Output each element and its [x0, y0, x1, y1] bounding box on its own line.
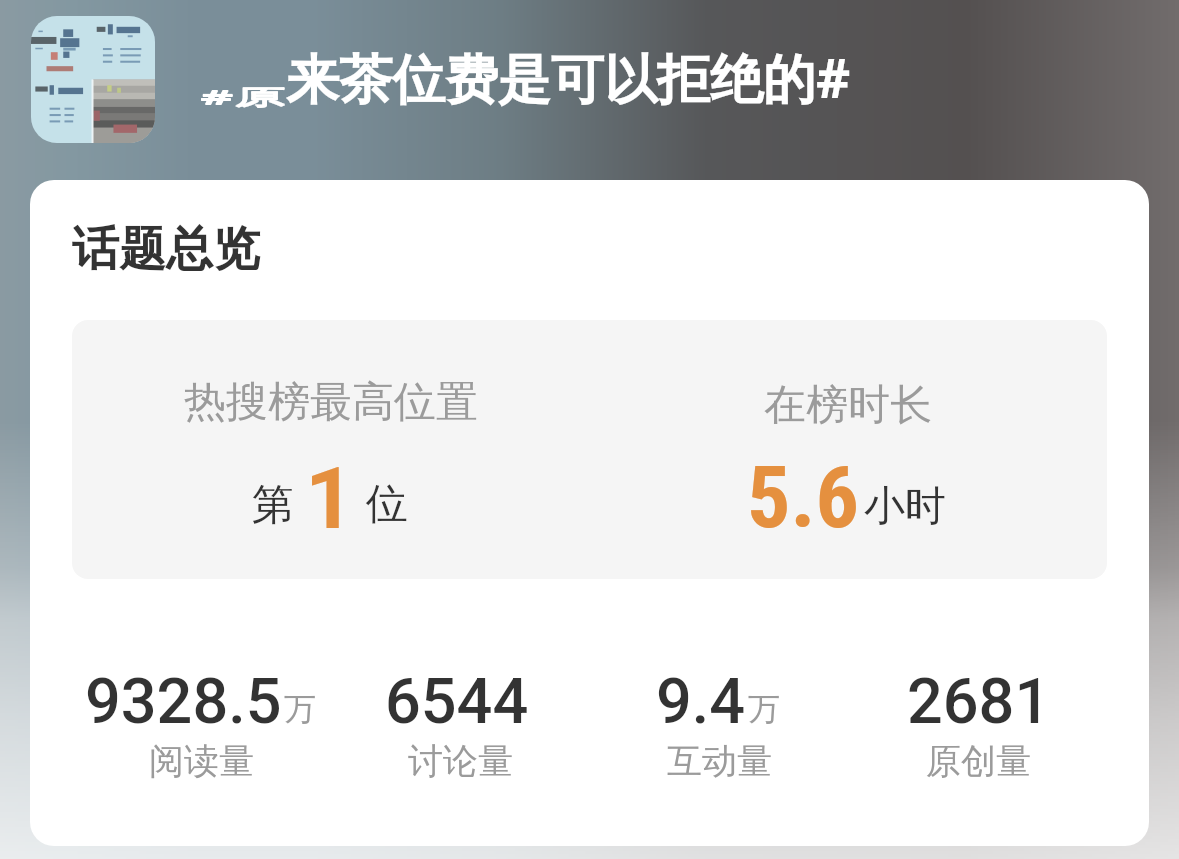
staticText: 在榜时长 [764, 379, 932, 432]
staticText: 互动量 [667, 739, 772, 783]
button[interactable]: 6544 [310, 650, 610, 770]
staticText: 原创量 [926, 739, 1031, 783]
staticText: 万 [748, 689, 780, 729]
staticText: #原 [200, 82, 286, 109]
staticText: 万 [284, 689, 316, 729]
staticText: 第 [252, 479, 294, 532]
button[interactable]: 9.4 [569, 650, 869, 770]
staticText: 阅读量 [149, 739, 254, 783]
button[interactable]: 热搜榜最高位置 [72, 320, 589, 579]
button[interactable]: 2681 [828, 650, 1128, 770]
staticText: 讨论量 [408, 739, 513, 783]
staticText: 小时 [864, 481, 946, 533]
staticText: 6544 [385, 665, 529, 739]
button[interactable]: 9328.5 [51, 650, 351, 770]
staticText: 来茶位费是可以拒绝的# [286, 41, 851, 113]
button[interactable]: 在榜时长 [589, 320, 1107, 579]
staticText: 9.4 [656, 665, 746, 739]
staticText: 位 [366, 478, 408, 531]
staticText: 5.6 [747, 447, 859, 548]
button[interactable]: #原 [200, 41, 765, 113]
staticText: #原 [200, 83, 286, 110]
button[interactable]: Topic cover image [31, 16, 155, 143]
staticText: 9328.5 [85, 665, 282, 739]
staticText: 热搜榜最高位置 [184, 376, 478, 429]
staticText: 1 [305, 448, 355, 549]
staticText: 话题总览 [72, 220, 260, 279]
staticText: 2681 [907, 665, 1051, 739]
